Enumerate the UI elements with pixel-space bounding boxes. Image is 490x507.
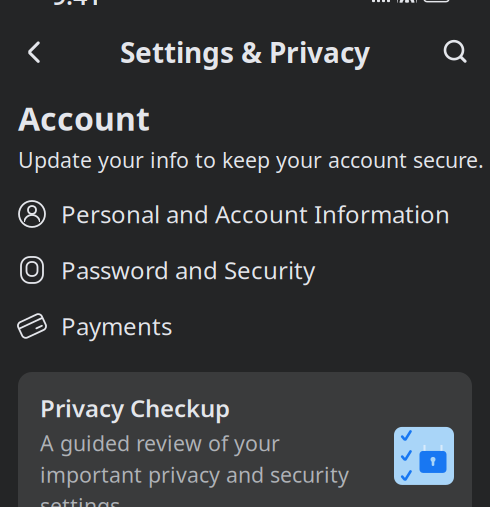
staticText: 9:41 [52,0,101,12]
staticText: A guided review of your important privac… [40,429,349,507]
button[interactable]: Personal and Account Information [0,186,490,242]
staticText: Account [18,97,150,140]
button[interactable]: Privacy Checkup [18,372,472,507]
staticText: Update your info to keep your account se… [18,146,484,174]
button[interactable]: Search [434,30,478,74]
button[interactable]: Password and Security [0,242,490,298]
staticText: Password and Security [61,254,315,286]
button[interactable]: Payments [0,298,490,354]
staticText: Payments [61,310,172,342]
staticText: Settings & Privacy [120,34,370,71]
staticText: Privacy Checkup [40,392,230,424]
staticText: Personal and Account Information [61,198,450,230]
button[interactable]: Back [12,30,56,74]
